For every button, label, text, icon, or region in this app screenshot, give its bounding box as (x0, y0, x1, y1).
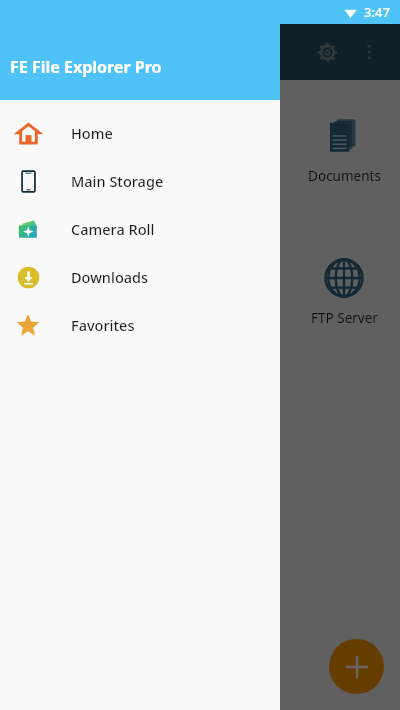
staticText: Favorites (71, 315, 135, 335)
button[interactable]: Computer (176, 255, 288, 327)
staticText: FE File Explorer Pro (10, 56, 162, 78)
button[interactable]: Documents (288, 113, 400, 185)
staticText: FTP Server (311, 309, 378, 327)
staticText: Downloads (14, 215, 85, 233)
button[interactable]: FTP Server (288, 255, 400, 327)
button[interactable]: Camera Roll (0, 205, 280, 253)
staticText: Home (71, 123, 113, 143)
button[interactable]: Downloads (0, 253, 280, 301)
button[interactable]: Add (329, 639, 384, 694)
staticText: Camera Roll (71, 219, 155, 239)
button[interactable]: Home (0, 109, 280, 157)
staticText: Main Storage (71, 171, 164, 191)
staticText: Documents (308, 167, 381, 185)
button[interactable]: Main Storage (0, 157, 280, 205)
button[interactable]: More options (352, 35, 386, 69)
staticText: 3:47 (364, 3, 390, 21)
button[interactable]: Favorites (0, 301, 280, 349)
staticText: Downloads (71, 267, 149, 287)
button[interactable]: Settings (308, 33, 346, 71)
